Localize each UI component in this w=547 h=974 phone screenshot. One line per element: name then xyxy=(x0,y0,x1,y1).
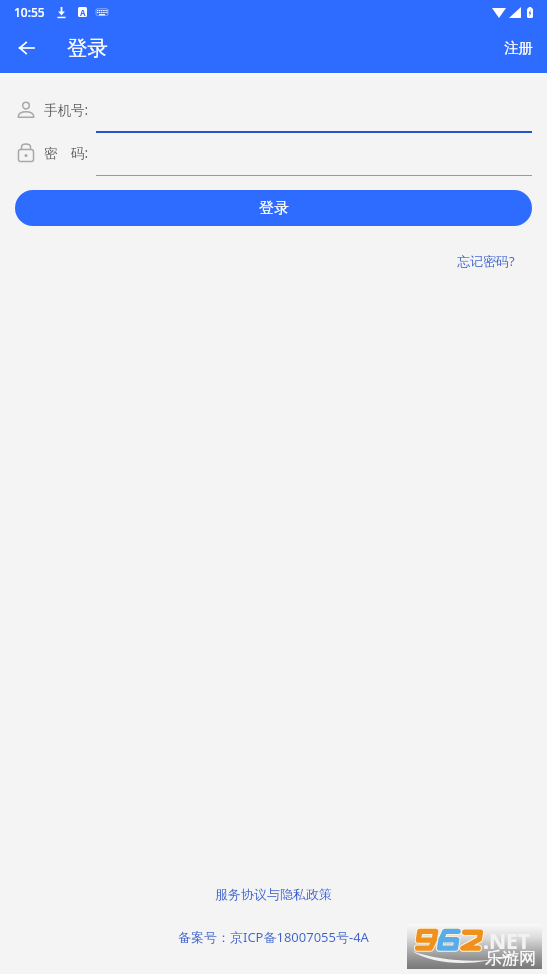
staticText: 10:55 xyxy=(14,4,45,20)
button[interactable]: 注册 xyxy=(488,26,547,70)
button[interactable]: 服务协议与隐私政策 xyxy=(205,880,342,908)
staticText: 密 码: xyxy=(44,144,89,162)
staticText: 乐游网 xyxy=(485,948,536,969)
staticText: 忘记密码? xyxy=(457,252,515,270)
staticText: 服务协议与隐私政策 xyxy=(215,886,332,902)
button[interactable]: Back xyxy=(6,28,46,68)
staticText: 备案号：京ICP备18007055号-4A xyxy=(178,928,369,946)
staticText: 手机号: xyxy=(44,101,89,119)
staticText: 登录 xyxy=(259,199,289,218)
staticText: .NET xyxy=(483,927,530,956)
staticText: 登录 xyxy=(67,35,108,61)
button[interactable]: 忘记密码? xyxy=(445,246,527,276)
button[interactable]: 登录 xyxy=(15,190,532,226)
staticText: A xyxy=(80,7,86,17)
staticText: 注册 xyxy=(504,39,533,57)
